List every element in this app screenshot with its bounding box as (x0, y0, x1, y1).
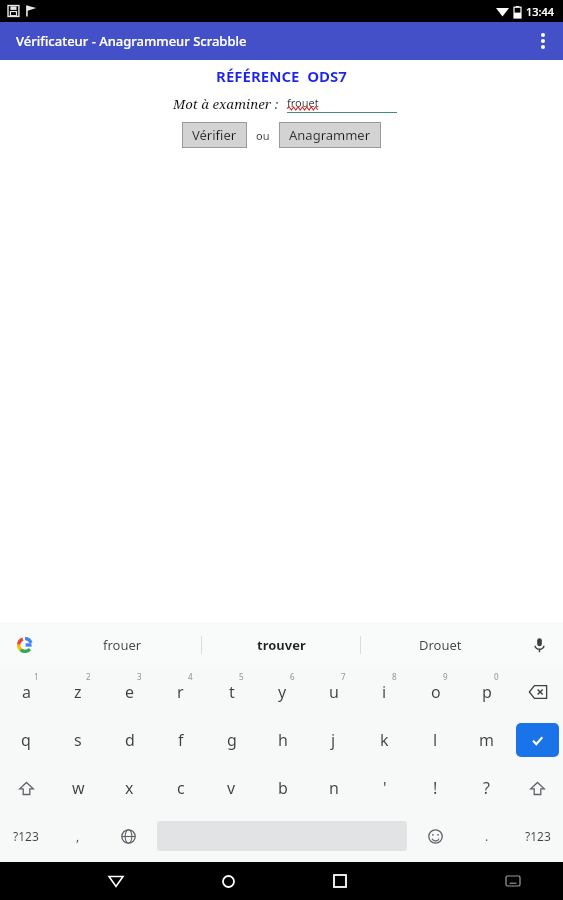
staticText: p (482, 681, 492, 703)
button[interactable]: ?123 (512, 812, 563, 860)
staticText: q (21, 729, 31, 751)
button[interactable]: t (206, 668, 257, 716)
button[interactable]: Backspace (512, 668, 563, 716)
button[interactable]: ' (359, 764, 410, 812)
staticText: v (227, 777, 236, 799)
button[interactable]: Google (10, 630, 40, 660)
button[interactable]: trouver (202, 622, 360, 668)
staticText: ?123 (13, 828, 39, 844)
staticText: f (178, 729, 184, 751)
button[interactable]: ?123 (0, 812, 52, 860)
staticText: Vérifier (192, 126, 237, 144)
staticText: e (125, 681, 135, 703)
button[interactable]: More options (523, 22, 563, 60)
button[interactable]: frouet (287, 94, 397, 113)
button[interactable]: Anagrammer (279, 122, 381, 148)
button[interactable]: x (104, 764, 155, 812)
staticText: c (177, 777, 185, 799)
button[interactable]: s (52, 716, 104, 764)
button[interactable]: Language (103, 812, 154, 860)
button[interactable]: y (257, 668, 308, 716)
staticText: b (278, 777, 288, 799)
button[interactable]: c (155, 764, 206, 812)
button[interactable]: i (359, 668, 410, 716)
button[interactable]: ? (461, 764, 512, 812)
button[interactable]: m (461, 716, 512, 764)
button[interactable]: frouer (44, 622, 201, 668)
staticText: ' (383, 777, 387, 799)
staticText: i (382, 681, 387, 703)
staticText: Mot à examiner : (173, 95, 279, 113)
button[interactable]: Shift (512, 764, 563, 812)
button[interactable]: z (52, 668, 104, 716)
staticText: r (177, 681, 184, 703)
staticText: ? (483, 777, 490, 799)
button[interactable]: p (461, 668, 512, 716)
button[interactable]: w (52, 764, 104, 812)
staticText: Anagrammer (289, 126, 371, 144)
button[interactable]: f (155, 716, 206, 764)
button[interactable]: . (461, 812, 512, 860)
staticText: o (431, 681, 441, 703)
button[interactable]: Enter (516, 723, 559, 757)
button[interactable]: o (410, 668, 461, 716)
button[interactable]: d (104, 716, 155, 764)
button[interactable]: l (410, 716, 461, 764)
staticText: , (76, 828, 80, 844)
button[interactable]: ! (410, 764, 461, 812)
button[interactable]: Recents (304, 862, 376, 900)
staticText: frouet (287, 95, 319, 110)
button[interactable]: Drouet (361, 622, 519, 668)
staticText: a (22, 681, 31, 703)
staticText: h (278, 729, 288, 751)
button[interactable]: e (104, 668, 155, 716)
button[interactable]: g (206, 716, 257, 764)
button[interactable]: Switch keyboard (477, 862, 549, 900)
staticText: 7 (341, 671, 346, 682)
staticText: g (227, 729, 237, 751)
button[interactable]: n (308, 764, 359, 812)
button[interactable]: r (155, 668, 206, 716)
staticText: Vérificateur - Anagrammeur Scrabble (16, 32, 247, 50)
button[interactable]: a (0, 668, 52, 716)
staticText: 1 (34, 671, 39, 682)
button[interactable]: Emoji (410, 812, 461, 860)
button[interactable]: v (206, 764, 257, 812)
button[interactable]: Vérifier (182, 122, 247, 148)
staticText: 13:44 (526, 4, 555, 19)
button[interactable]: b (257, 764, 308, 812)
button[interactable]: k (359, 716, 410, 764)
button[interactable]: Home (192, 862, 264, 900)
staticText: 8 (392, 671, 397, 682)
staticText: 5 (239, 671, 244, 682)
staticText: 0 (494, 671, 499, 682)
staticText: w (72, 777, 85, 799)
button[interactable]: h (257, 716, 308, 764)
staticText: ?123 (525, 828, 551, 844)
staticText: trouver (257, 636, 306, 654)
staticText: u (329, 681, 339, 703)
button[interactable]: u (308, 668, 359, 716)
staticText: 6 (290, 671, 295, 682)
staticText: ou (256, 128, 270, 143)
staticText: 2 (86, 671, 91, 682)
staticText: RÉFÉRENCE ODS7 (216, 66, 347, 86)
button[interactable]: j (308, 716, 359, 764)
button[interactable]: Back (80, 862, 152, 900)
button[interactable]: Shift (0, 764, 52, 812)
button[interactable]: Voice input (525, 631, 553, 659)
staticText: n (329, 777, 339, 799)
button[interactable]: , (52, 812, 103, 860)
staticText: Drouet (419, 636, 462, 654)
staticText: y (278, 681, 287, 703)
staticText: 9 (443, 671, 448, 682)
staticText: k (380, 729, 389, 751)
staticText: 3 (137, 671, 142, 682)
staticText: d (125, 729, 135, 751)
staticText: . (485, 828, 489, 844)
staticText: ! (433, 777, 438, 799)
staticText: frouer (103, 636, 142, 654)
button[interactable]: q (0, 716, 52, 764)
staticText: x (125, 777, 134, 799)
